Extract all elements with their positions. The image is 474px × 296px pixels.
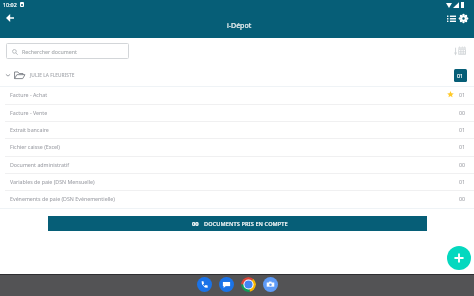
staticText: Facture - Vente [10, 109, 48, 116]
staticText: 01 [457, 72, 464, 79]
button[interactable]: Back [0, 8, 19, 27]
staticText: i-Dépot [227, 21, 252, 31]
staticText: 00 [459, 109, 466, 116]
staticText: 01 [459, 143, 466, 150]
button[interactable]: Chrome [241, 277, 256, 292]
button[interactable]: Evénements de paie (DSN Evénementielle) [0, 190, 474, 207]
button[interactable]: Facture - Vente [0, 104, 474, 121]
button[interactable]: List view [442, 9, 461, 28]
staticText: 00 [459, 161, 466, 168]
staticText: 00 [192, 220, 199, 228]
staticText: 01 [459, 91, 466, 98]
button[interactable]: 01 [454, 69, 467, 82]
staticText: 01 [459, 126, 466, 133]
staticText: Rechercher document [22, 48, 77, 55]
staticText: 01 [459, 178, 466, 185]
button[interactable]: Variables de paie (DSN Mensuelle) [0, 173, 474, 190]
button[interactable]: Sort by date [451, 42, 469, 60]
button[interactable]: Rechercher document [6, 43, 129, 59]
button[interactable]: Camera [263, 277, 278, 292]
button[interactable]: JULIE LA FLEURISTE [0, 64, 474, 86]
button[interactable]: Extrait bancaire [0, 121, 474, 138]
staticText: Document administratif [10, 161, 70, 168]
button[interactable]: Facture - Achat [0, 86, 474, 103]
staticText: Fichier caisse (Excel) [10, 143, 60, 150]
staticText: 00 [459, 195, 466, 202]
staticText: Variables de paie (DSN Mensuelle) [10, 178, 95, 185]
staticText: Facture - Achat [10, 91, 48, 98]
button[interactable]: Add [447, 246, 471, 270]
staticText: Evénements de paie (DSN Evénementielle) [10, 195, 115, 202]
button[interactable]: Fichier caisse (Excel) [0, 138, 474, 155]
staticText: Extrait bancaire [10, 126, 49, 133]
button[interactable]: Phone [197, 277, 212, 292]
staticText: JULIE LA FLEURISTE [30, 72, 75, 79]
button[interactable]: Settings [454, 9, 473, 28]
button[interactable]: Messages [219, 277, 234, 292]
staticText: DOCUMENTS PRIS EN COMPTE [204, 220, 288, 228]
button[interactable]: Document administratif [0, 156, 474, 173]
staticText: 10:02 [3, 1, 17, 8]
button[interactable]: 00 [48, 216, 427, 231]
